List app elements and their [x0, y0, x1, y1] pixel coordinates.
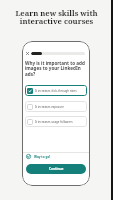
staticText: It increases usage followers: [35, 120, 73, 124]
button[interactable]: Continue: [26, 164, 86, 174]
staticText: Continue: [49, 167, 64, 171]
button[interactable]: Close: [25, 51, 30, 56]
button[interactable]: It increases click-through rates: [25, 85, 87, 96]
staticText: It increases click-through rates: [35, 89, 77, 93]
button[interactable]: It increases usage followers: [25, 116, 87, 127]
staticText: Way to go!: [34, 155, 51, 159]
staticText: Why is it important to add images to you…: [25, 60, 87, 78]
staticText: Learn new skills with interactive course…: [15, 8, 98, 27]
staticText: It increases exposure: [35, 105, 64, 109]
button[interactable]: It increases exposure: [25, 101, 87, 112]
